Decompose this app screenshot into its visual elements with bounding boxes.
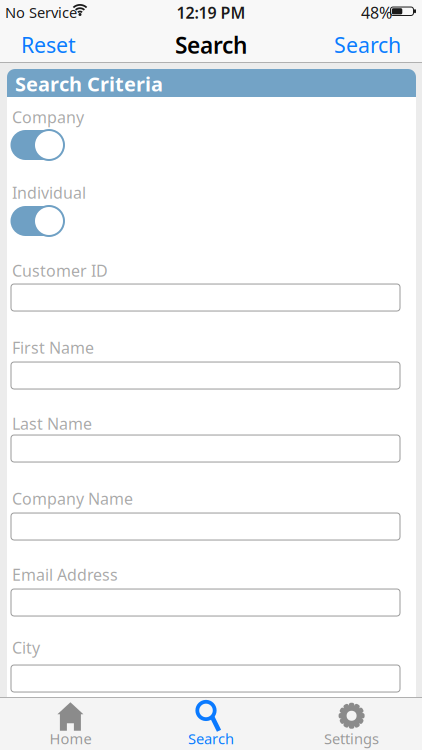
button[interactable] (10, 130, 64, 160)
staticText: City (12, 637, 40, 658)
button[interactable] (11, 589, 400, 616)
staticText: Settings (324, 729, 379, 748)
button[interactable] (11, 435, 400, 462)
staticText: Last Name (12, 413, 92, 434)
staticText: Company Name (12, 488, 133, 509)
staticText: Customer ID (12, 260, 108, 281)
staticText: First Name (12, 337, 94, 358)
staticText: 12:19 PM (176, 2, 245, 23)
staticText: Email Address (12, 564, 118, 585)
button[interactable]: Search (334, 30, 401, 59)
staticText: Home (49, 729, 91, 748)
staticText: Search (188, 729, 234, 748)
button[interactable] (11, 513, 400, 540)
staticText: Search (175, 30, 247, 60)
staticText: Company (12, 106, 84, 128)
staticText: Reset (21, 30, 76, 59)
staticText: Search Criteria (15, 70, 163, 97)
staticText: Search (334, 30, 401, 59)
staticText: 48% (361, 2, 392, 23)
button[interactable]: Reset (21, 30, 76, 59)
button[interactable]: Search (141, 698, 281, 750)
button[interactable]: Settings (281, 698, 422, 750)
button[interactable] (10, 206, 64, 236)
button[interactable]: Home (0, 698, 141, 750)
staticText: Individual (12, 182, 86, 203)
button[interactable] (11, 284, 400, 311)
button[interactable] (11, 362, 400, 389)
staticText: No Service (5, 2, 77, 22)
button[interactable] (11, 665, 400, 692)
